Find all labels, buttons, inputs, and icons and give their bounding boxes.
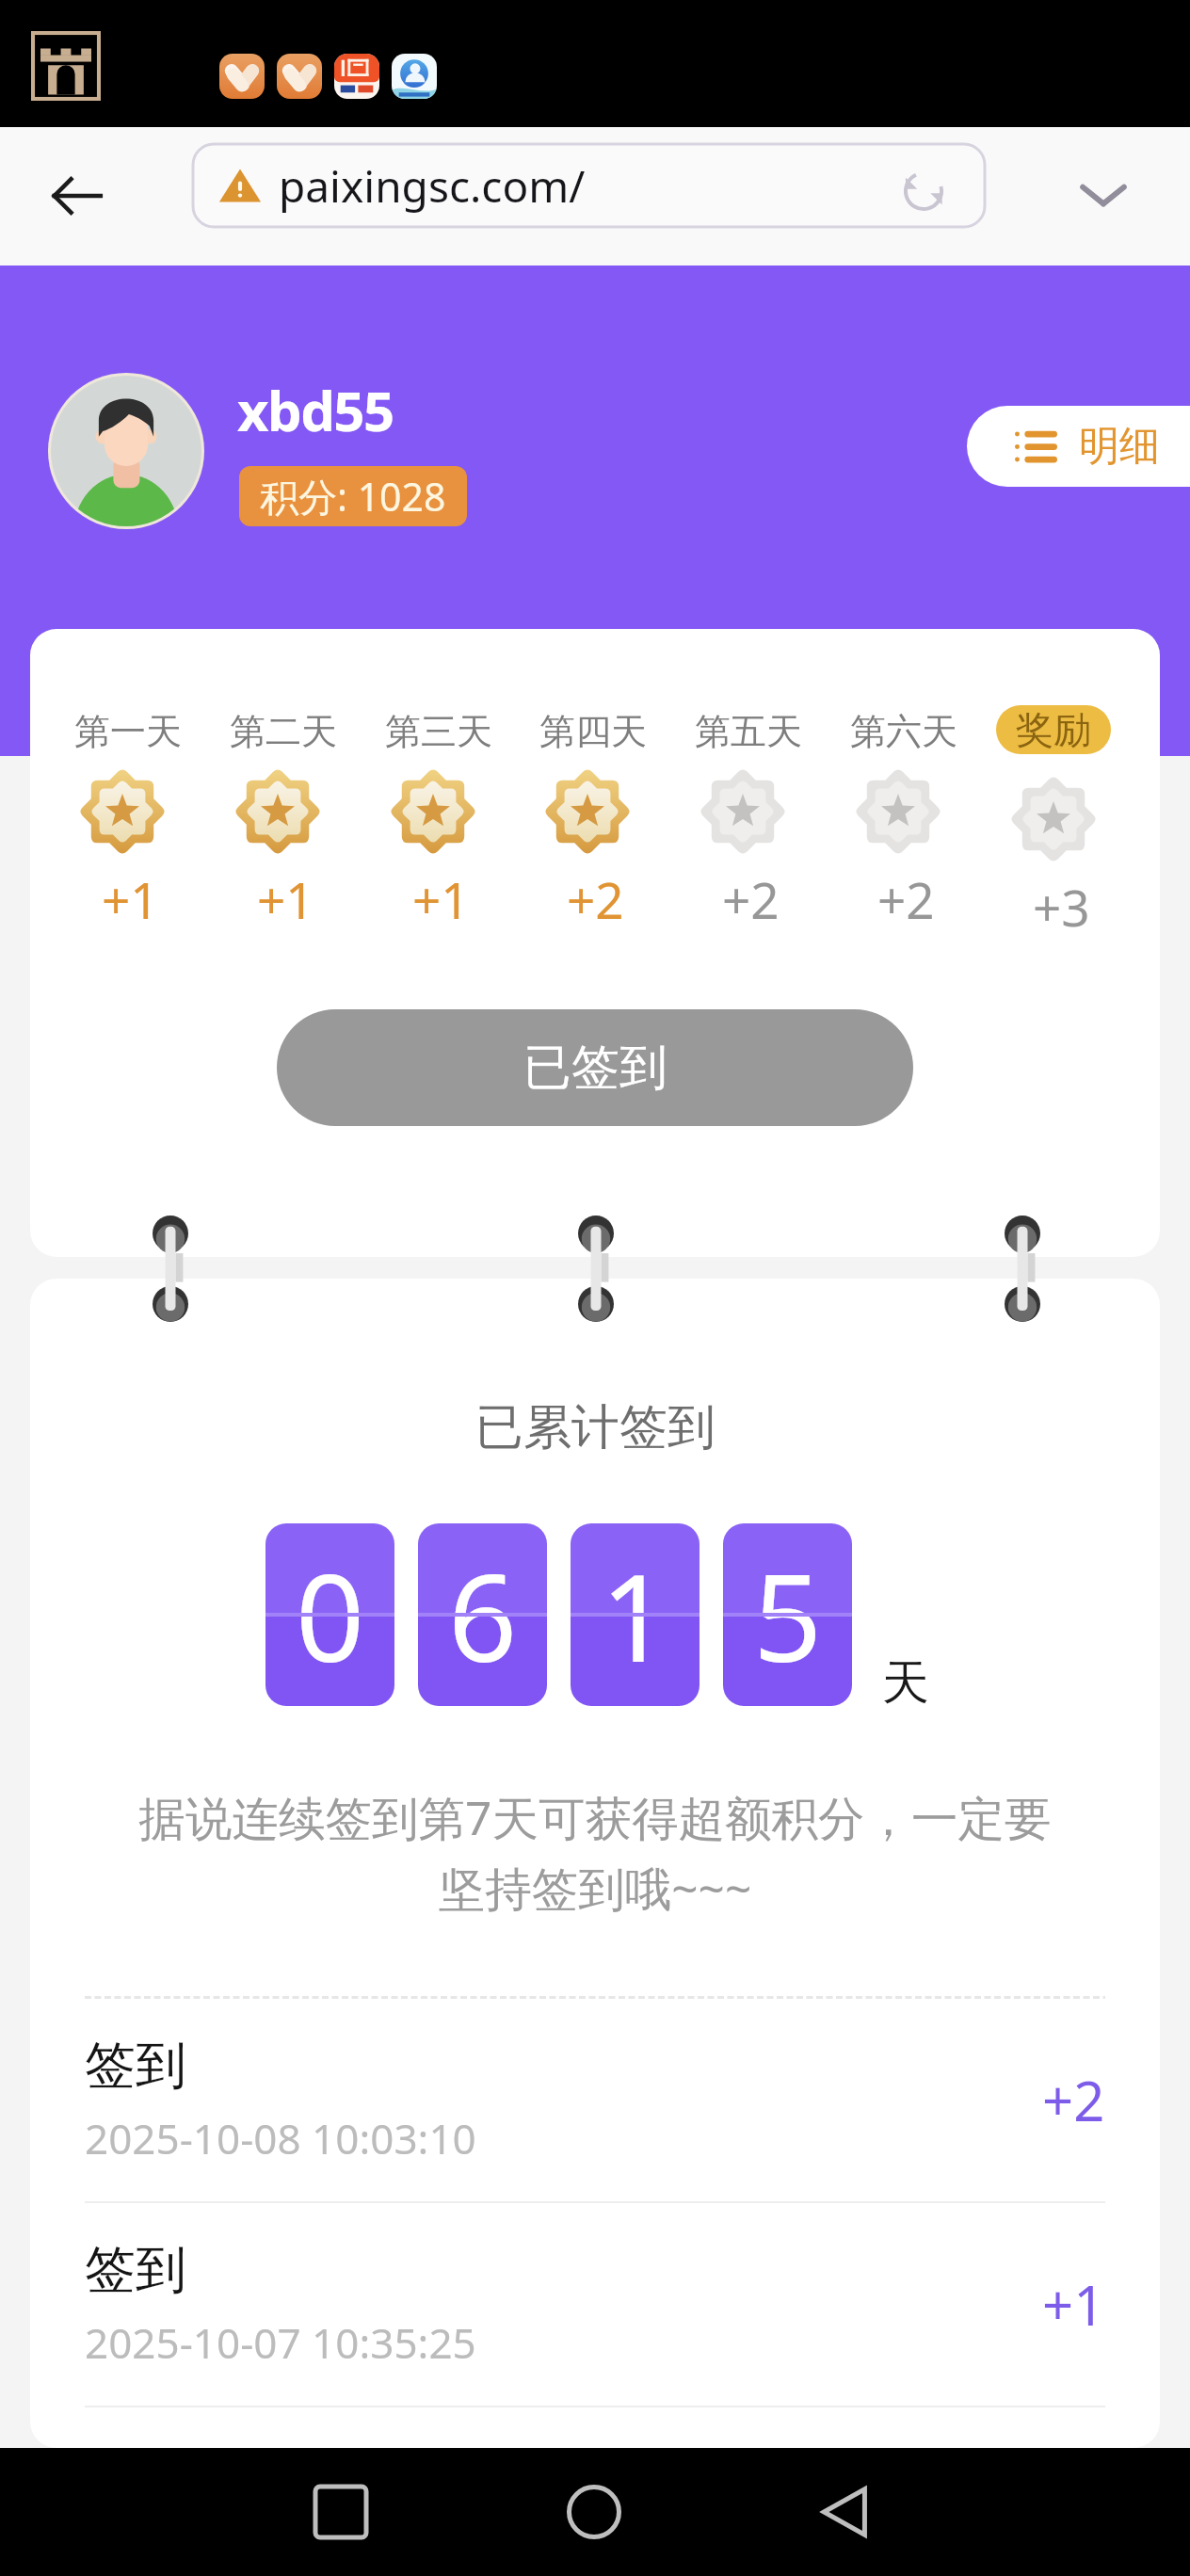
staticText: +3 — [1033, 873, 1090, 941]
button[interactable]: Home — [551, 2469, 637, 2555]
staticText: +1 — [102, 865, 159, 933]
staticText: 第六天 — [850, 709, 957, 754]
staticText: 明细 — [1079, 421, 1160, 472]
staticText: 签到 — [85, 2034, 186, 2098]
button[interactable]: 第六天 — [828, 709, 968, 933]
staticText: +1 — [1042, 2267, 1105, 2342]
staticText: 1 — [601, 1533, 670, 1697]
staticText: +1 — [412, 865, 470, 933]
button[interactable]: paixingsc.com/ — [193, 144, 985, 227]
staticText: xbd55 — [237, 373, 394, 447]
staticText: 第三天 — [385, 709, 492, 754]
button[interactable]: 明细 — [967, 406, 1190, 487]
button[interactable]: Expand — [1064, 154, 1143, 233]
button[interactable]: 第一天 — [53, 709, 192, 933]
staticText: 奖励 — [1016, 706, 1091, 753]
button[interactable]: 奖励 — [984, 709, 1123, 941]
staticText: +2 — [722, 865, 780, 933]
staticText: 天 — [882, 1653, 929, 1713]
staticText: 第五天 — [695, 709, 802, 754]
staticText: paixingsc.com/ — [279, 156, 586, 216]
button[interactable]: 已签到 — [277, 1009, 913, 1126]
button[interactable]: 第二天 — [208, 709, 347, 933]
button[interactable]: 第四天 — [518, 709, 657, 933]
button[interactable]: Recents — [297, 2469, 384, 2555]
staticText: 5 — [753, 1533, 823, 1697]
staticText: 积分: 1028 — [260, 470, 446, 523]
staticText: 已累计签到 — [475, 1397, 716, 1457]
staticText: 第四天 — [539, 709, 647, 754]
button[interactable]: 签到 — [85, 2202, 1105, 2406]
staticText: 第二天 — [230, 709, 337, 754]
button[interactable]: Back — [36, 154, 119, 237]
staticText: 据说连续签到第7天可获得超额积分，一定要坚持签到哦~~~ — [124, 1785, 1066, 1920]
button[interactable]: Back — [803, 2469, 890, 2555]
staticText: 6 — [448, 1533, 518, 1697]
button[interactable]: 签到 — [85, 1998, 1105, 2201]
button[interactable]: 第三天 — [363, 709, 503, 933]
staticText: +1 — [257, 865, 314, 933]
staticText: 0 — [296, 1533, 365, 1697]
staticText: 2025-10-08 10:03:10 — [85, 2110, 476, 2166]
staticText: 2025-10-07 10:35:25 — [85, 2314, 476, 2371]
staticText: 签到 — [85, 2238, 186, 2302]
staticText: 第一天 — [74, 709, 182, 754]
button[interactable]: Profile avatar — [48, 373, 204, 529]
staticText: +2 — [1042, 2063, 1105, 2137]
staticText: +2 — [877, 865, 935, 933]
staticText: +2 — [567, 865, 624, 933]
staticText: 已签到 — [523, 1038, 667, 1098]
button[interactable]: 第五天 — [673, 709, 812, 933]
